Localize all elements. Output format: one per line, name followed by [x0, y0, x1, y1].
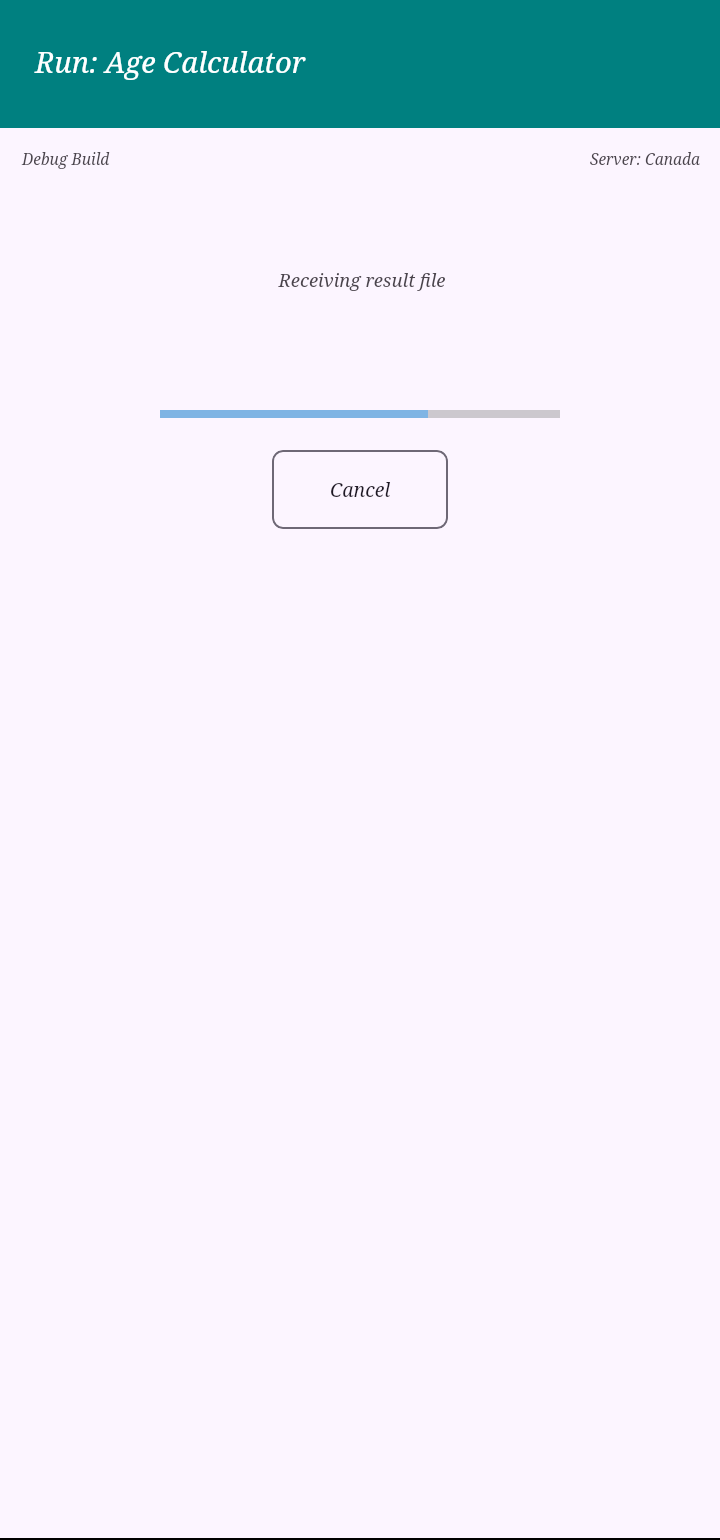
staticText: Cancel — [330, 476, 391, 503]
staticText: Debug Build — [22, 148, 110, 169]
button[interactable]: Cancel — [272, 450, 448, 529]
other: Download progress 67 percent — [160, 410, 560, 418]
staticText: Run: Age Calculator — [35, 42, 306, 82]
staticText: Server: Canada — [590, 148, 700, 169]
staticText: Receiving result file — [2, 267, 720, 292]
